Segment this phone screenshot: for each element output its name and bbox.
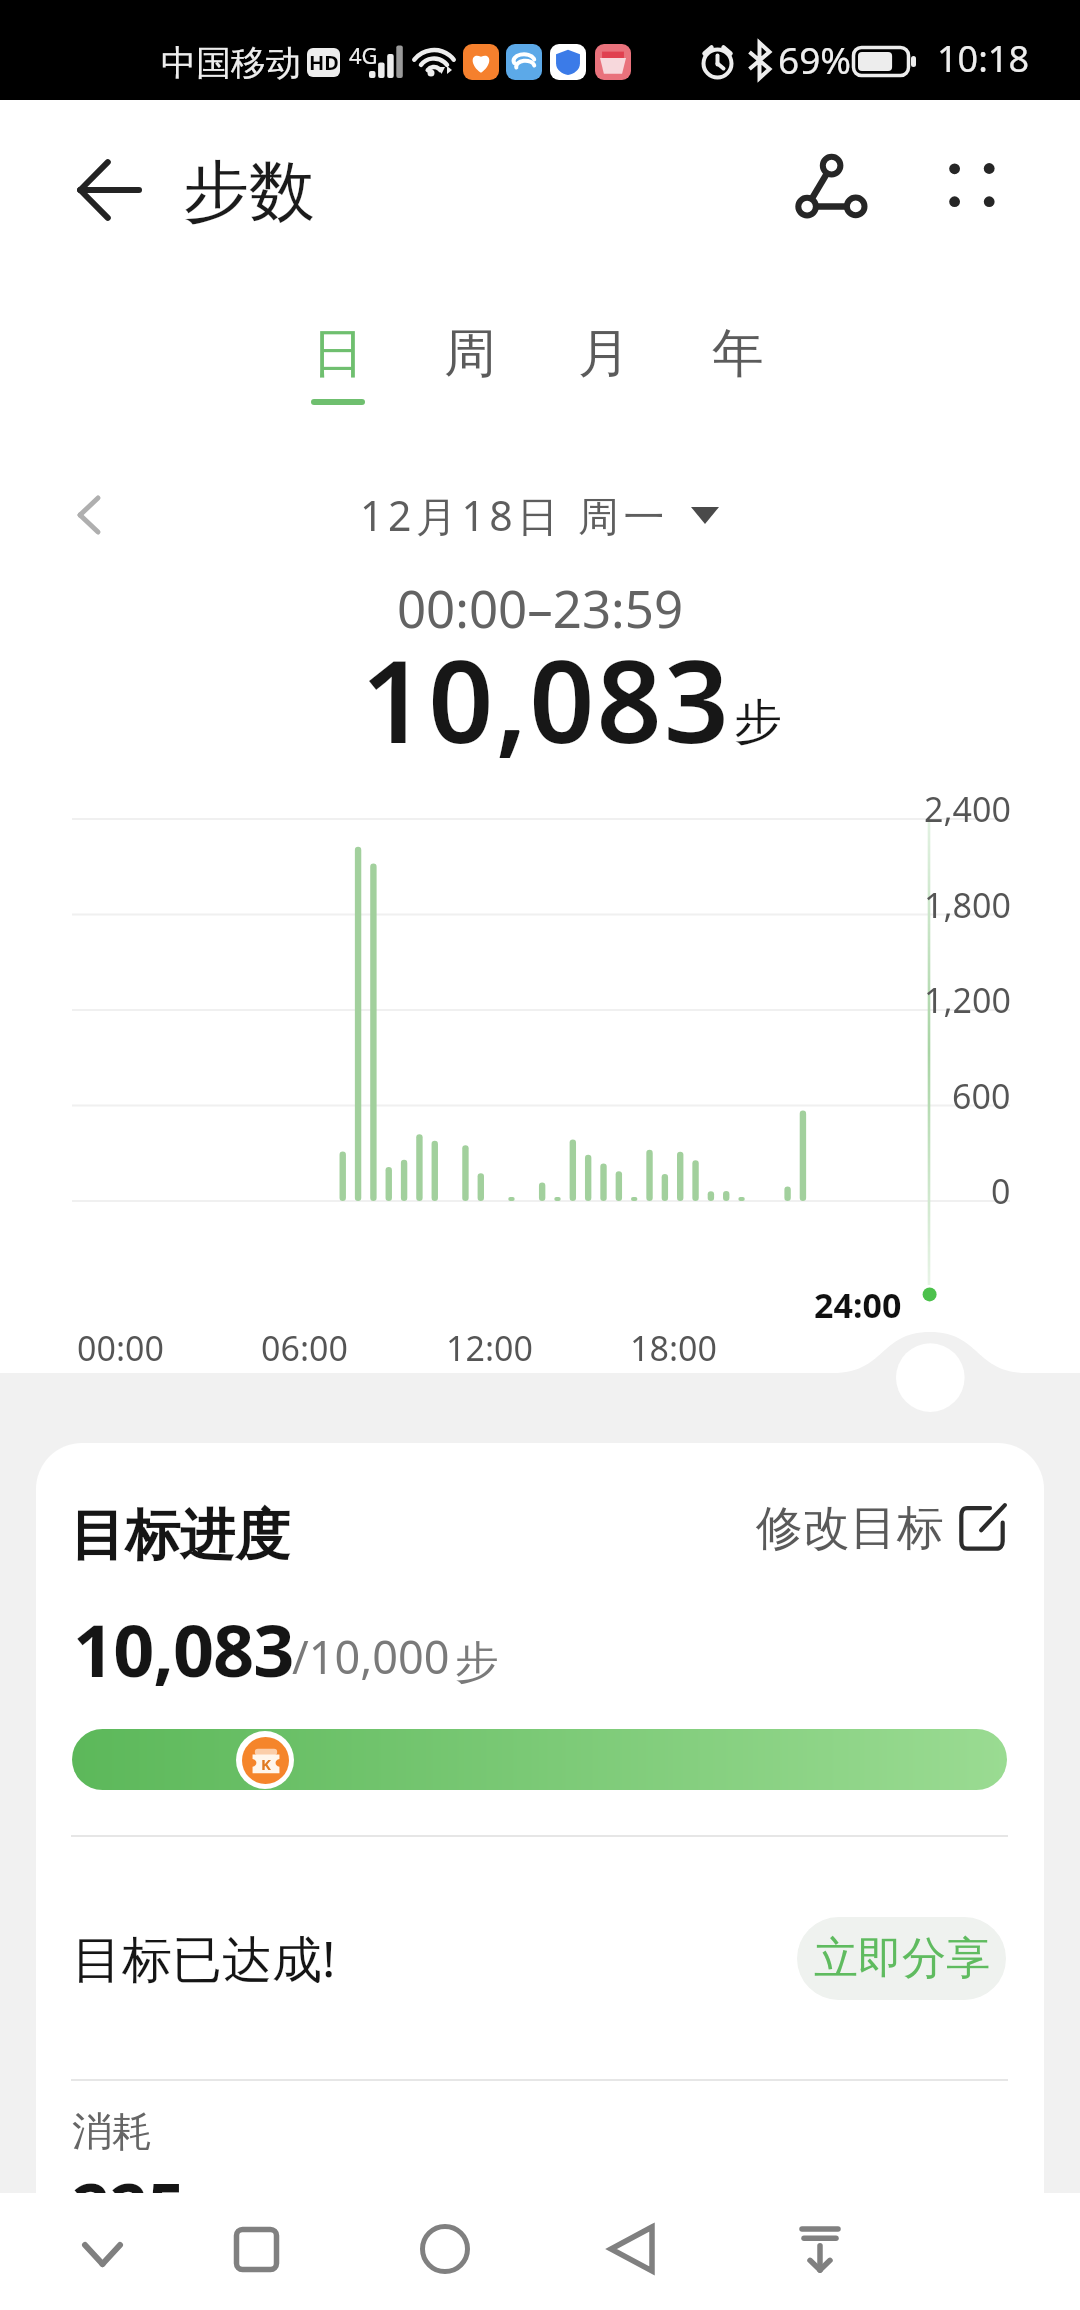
staticText: 2,400 bbox=[924, 786, 1011, 832]
staticText: /10,000 bbox=[292, 1626, 450, 1687]
staticText: 修改目标 bbox=[756, 1499, 944, 1558]
button[interactable]: 月 bbox=[544, 300, 664, 420]
staticText: 步数 bbox=[183, 150, 315, 233]
staticText: 06:00 bbox=[261, 1325, 348, 1371]
button[interactable]: Collapse bbox=[46, 2198, 158, 2310]
button[interactable]: Share bbox=[761, 131, 871, 241]
button[interactable]: Back bbox=[54, 135, 164, 245]
staticText: 12:00 bbox=[446, 1325, 533, 1371]
staticText: 10:18 bbox=[937, 34, 1030, 83]
staticText: 24:00 bbox=[814, 1282, 902, 1328]
staticText: 12月18日 周一 bbox=[360, 487, 669, 543]
staticText: K bbox=[261, 1754, 271, 1774]
staticText: 4G bbox=[349, 40, 378, 70]
staticText: 600 bbox=[952, 1073, 1011, 1119]
button[interactable]: Hide navigation bar bbox=[764, 2193, 876, 2305]
staticText: 225 bbox=[72, 2161, 186, 2203]
staticText: HD bbox=[309, 49, 339, 76]
button[interactable]: Recents bbox=[200, 2193, 312, 2305]
staticText: 立即分享 bbox=[814, 1931, 990, 1986]
staticText: 0 bbox=[991, 1168, 1011, 1214]
staticText: 10,083 bbox=[73, 1600, 294, 1698]
button[interactable]: More options bbox=[902, 130, 1012, 240]
staticText: 00:00–23:59 bbox=[0, 573, 1080, 642]
button[interactable]: 年 bbox=[678, 300, 798, 420]
button[interactable]: 日 bbox=[278, 300, 398, 420]
staticText: 1,200 bbox=[924, 977, 1011, 1023]
staticText: 月 bbox=[544, 321, 664, 387]
button[interactable]: Previous day bbox=[49, 475, 129, 555]
staticText: 年 bbox=[678, 321, 798, 387]
staticText: 中国移动 bbox=[161, 41, 301, 85]
button[interactable]: 周 bbox=[410, 300, 530, 420]
staticText: 步 bbox=[455, 1635, 499, 1690]
staticText: 1,800 bbox=[924, 882, 1011, 928]
staticText: 日 bbox=[278, 321, 398, 387]
staticText: 69% bbox=[778, 34, 852, 84]
button[interactable]: 立即分享 bbox=[797, 1917, 1006, 2000]
button[interactable]: Back bbox=[575, 2193, 687, 2305]
button[interactable]: 修改目标 bbox=[756, 1495, 1004, 1561]
button[interactable]: Home bbox=[389, 2193, 501, 2305]
staticText: 10,083 bbox=[361, 621, 731, 776]
button[interactable]: 12月18日 周一 bbox=[360, 478, 719, 552]
staticText: 目标已达成! bbox=[72, 1924, 336, 1992]
staticText: 步 bbox=[734, 692, 782, 752]
staticText: 周 bbox=[410, 321, 530, 387]
staticText: 00:00 bbox=[77, 1325, 164, 1371]
staticText: 消耗 bbox=[72, 2106, 152, 2156]
staticText: 目标进度 bbox=[70, 1501, 290, 1570]
staticText: 18:00 bbox=[630, 1325, 717, 1371]
